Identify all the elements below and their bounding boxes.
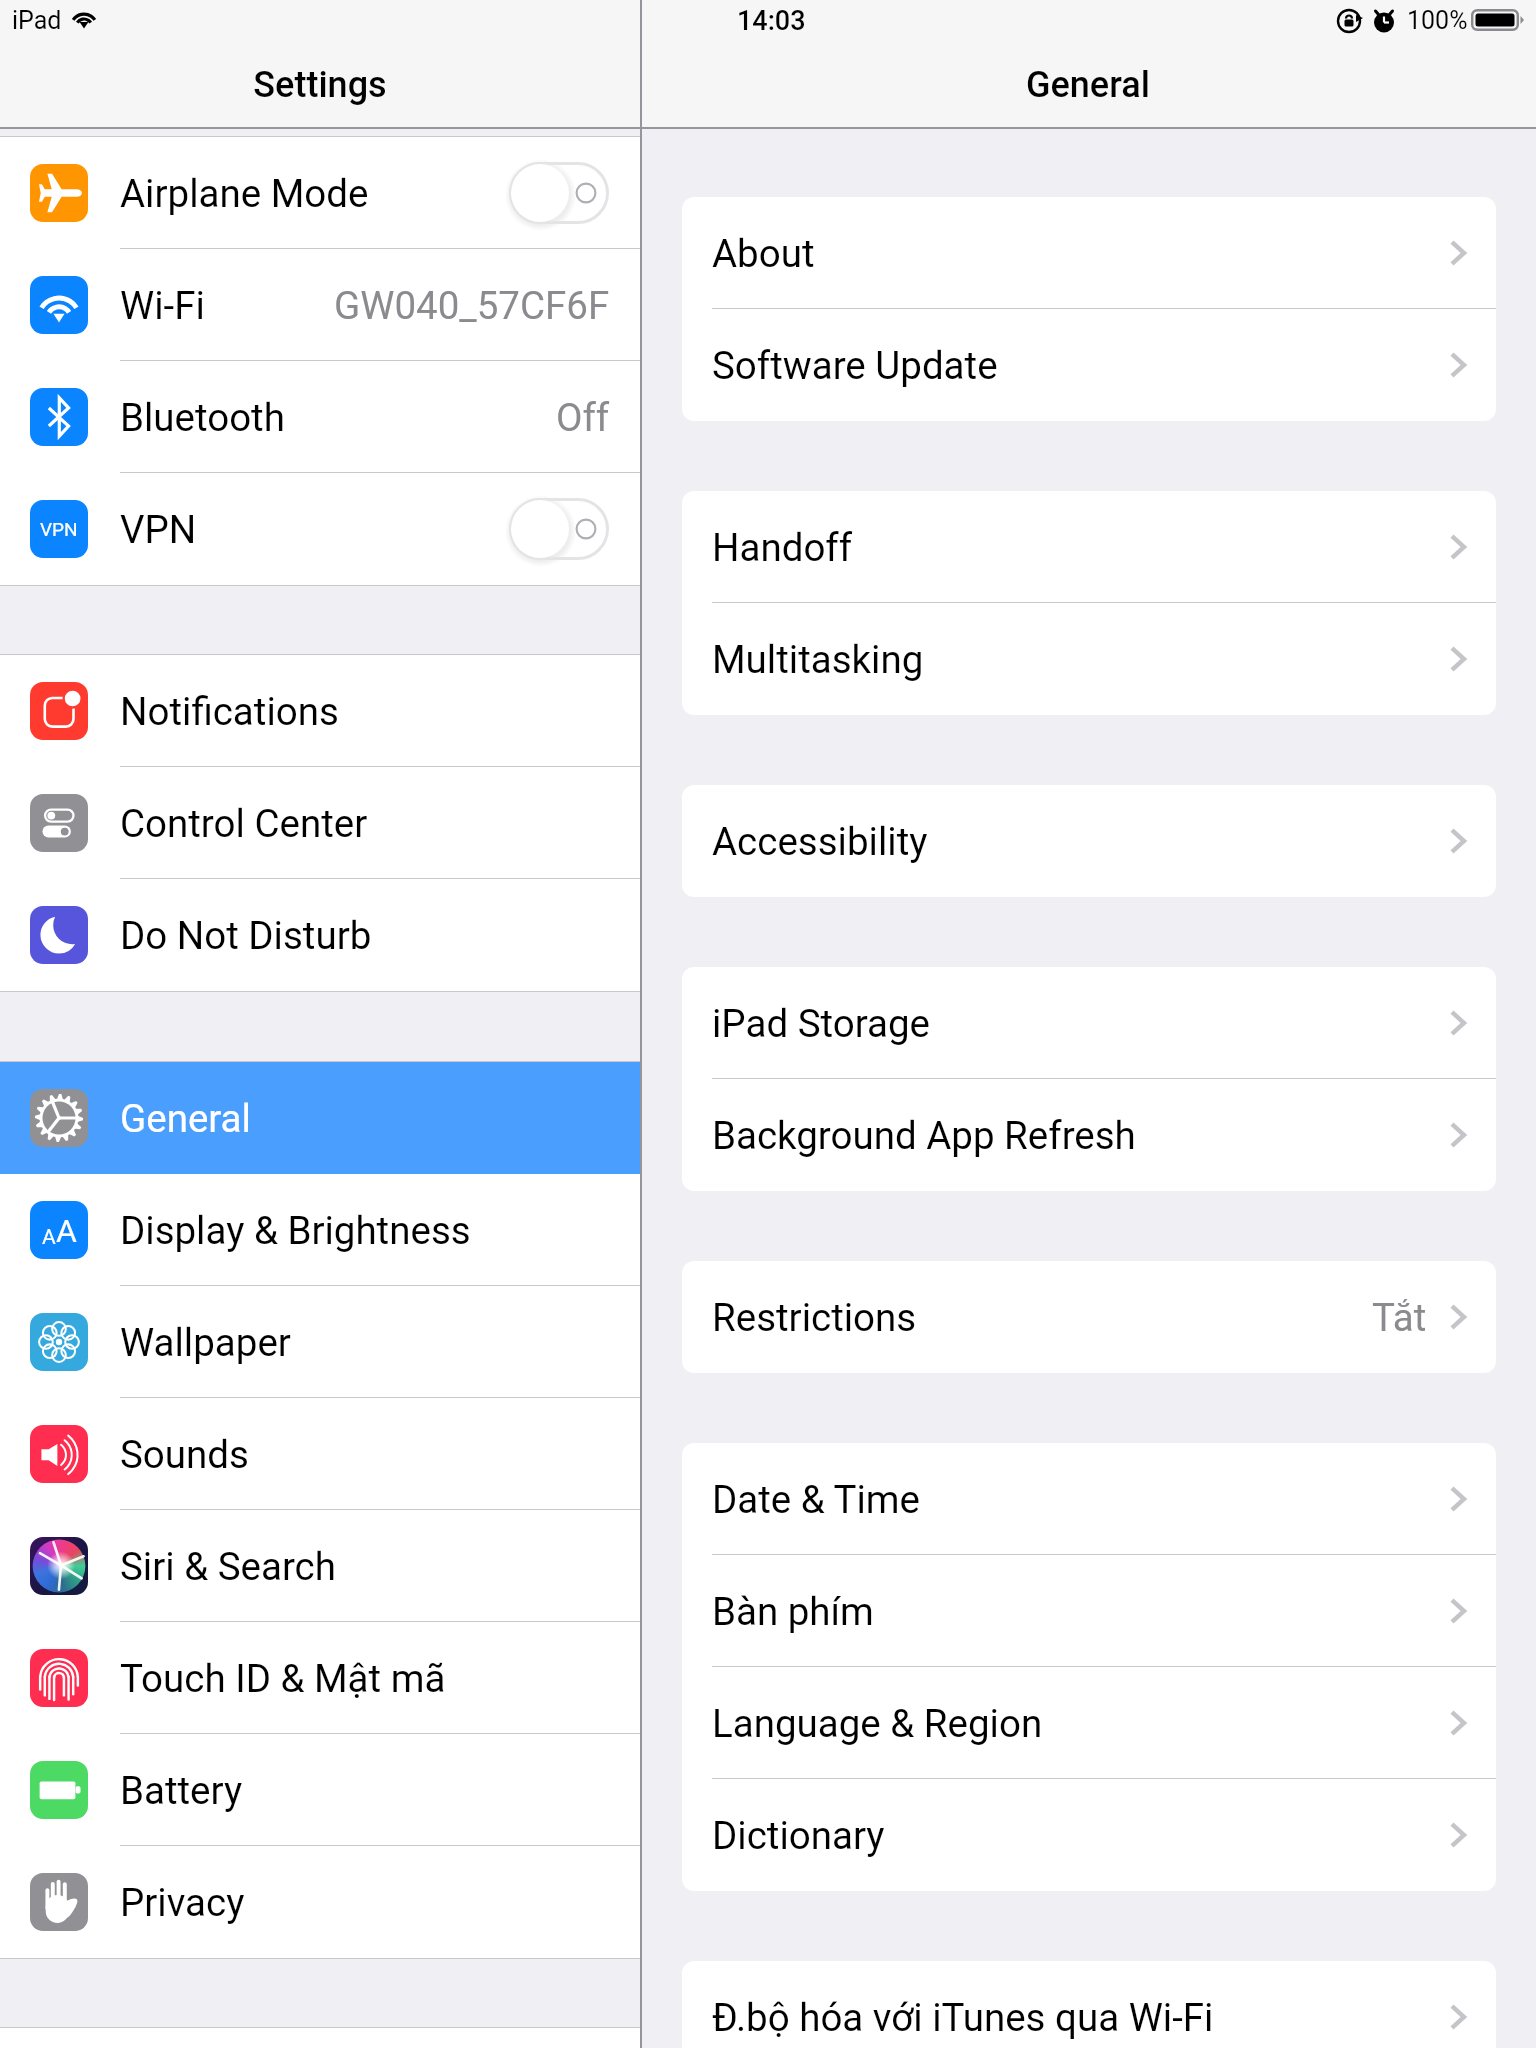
staticText: iPad — [12, 6, 62, 35]
staticText: Battery — [120, 1768, 243, 1813]
button[interactable]: Wallpaper — [0, 1286, 640, 1398]
staticText: Date & Time — [712, 1477, 921, 1522]
button[interactable]: Đ.bộ hóa với iTunes qua Wi-Fi — [682, 1961, 1496, 2048]
button[interactable]: Handoff — [682, 491, 1496, 603]
staticText: 100% — [1407, 6, 1468, 35]
staticText: Privacy — [120, 1880, 245, 1925]
staticText: Wi-Fi — [120, 283, 205, 328]
staticText: GW040_57CF6F — [334, 283, 610, 328]
button[interactable]: Language & Region — [682, 1667, 1496, 1779]
staticText: Wallpaper — [120, 1320, 291, 1365]
staticText: Siri & Search — [120, 1544, 336, 1589]
button[interactable]: Notifications — [0, 655, 640, 767]
staticText: Language & Region — [712, 1701, 1043, 1746]
staticText: Sounds — [120, 1432, 249, 1477]
staticText: Control Center — [120, 801, 368, 846]
button[interactable]: Privacy — [0, 1846, 640, 1958]
staticText: A — [42, 1225, 56, 1250]
staticText: A — [56, 1212, 77, 1250]
staticText: 14:03 — [737, 5, 806, 37]
button[interactable]: Software Update — [682, 309, 1496, 421]
button[interactable]: Touch ID & Mật mã — [0, 1622, 640, 1734]
button[interactable]: Control Center — [0, 767, 640, 879]
staticText: Do Not Disturb — [120, 913, 372, 958]
button[interactable]: General — [0, 1062, 640, 1174]
staticText: iPad Storage — [712, 1001, 930, 1046]
button[interactable]: Siri & Search — [0, 1510, 640, 1622]
staticText: Bluetooth — [120, 395, 285, 440]
staticText: Display & Brightness — [120, 1208, 471, 1253]
staticText: Restrictions — [712, 1295, 917, 1340]
staticText: Tắt — [1372, 1295, 1427, 1340]
button[interactable]: iPad Storage — [682, 967, 1496, 1079]
button[interactable]: Airplane Mode — [0, 137, 640, 249]
staticText: Off — [556, 395, 610, 440]
staticText: VPN — [40, 518, 78, 540]
button[interactable]: Dictionary — [682, 1779, 1496, 1891]
staticText: Airplane Mode — [120, 171, 369, 216]
staticText: Touch ID & Mật mã — [120, 1656, 446, 1701]
button[interactable]: Restrictions — [682, 1261, 1496, 1373]
staticText: Settings — [0, 64, 640, 106]
button[interactable]: Date & Time — [682, 1443, 1496, 1555]
button[interactable]: Battery — [0, 1734, 640, 1846]
staticText: Background App Refresh — [712, 1113, 1136, 1158]
button[interactable]: VPN — [0, 473, 640, 585]
button[interactable]: Accessibility — [682, 785, 1496, 897]
button[interactable]: Background App Refresh — [682, 1079, 1496, 1191]
staticText: Software Update — [712, 343, 998, 388]
button[interactable]: Wi-Fi — [0, 249, 640, 361]
staticText: About — [712, 231, 815, 276]
staticText: Multitasking — [712, 637, 924, 682]
staticText: Handoff — [712, 525, 853, 570]
staticText: Bàn phím — [712, 1589, 874, 1634]
button[interactable]: Bàn phím — [682, 1555, 1496, 1667]
button[interactable]: Bluetooth — [0, 361, 640, 473]
staticText: Đ.bộ hóa với iTunes qua Wi-Fi — [712, 1995, 1214, 2040]
staticText: Dictionary — [712, 1813, 885, 1858]
button[interactable]: Multitasking — [682, 603, 1496, 715]
staticText: Accessibility — [712, 819, 928, 864]
staticText: Notifications — [120, 689, 339, 734]
button[interactable]: About — [682, 197, 1496, 309]
button[interactable]: VPN switch, off — [509, 498, 609, 560]
button[interactable]: Airplane Mode switch, off — [509, 162, 609, 224]
staticText: VPN — [120, 507, 197, 552]
staticText: General — [640, 64, 1536, 106]
button[interactable]: Do Not Disturb — [0, 879, 640, 991]
staticText: General — [120, 1096, 251, 1141]
button[interactable]: A — [0, 1174, 640, 1286]
button[interactable]: Sounds — [0, 1398, 640, 1510]
